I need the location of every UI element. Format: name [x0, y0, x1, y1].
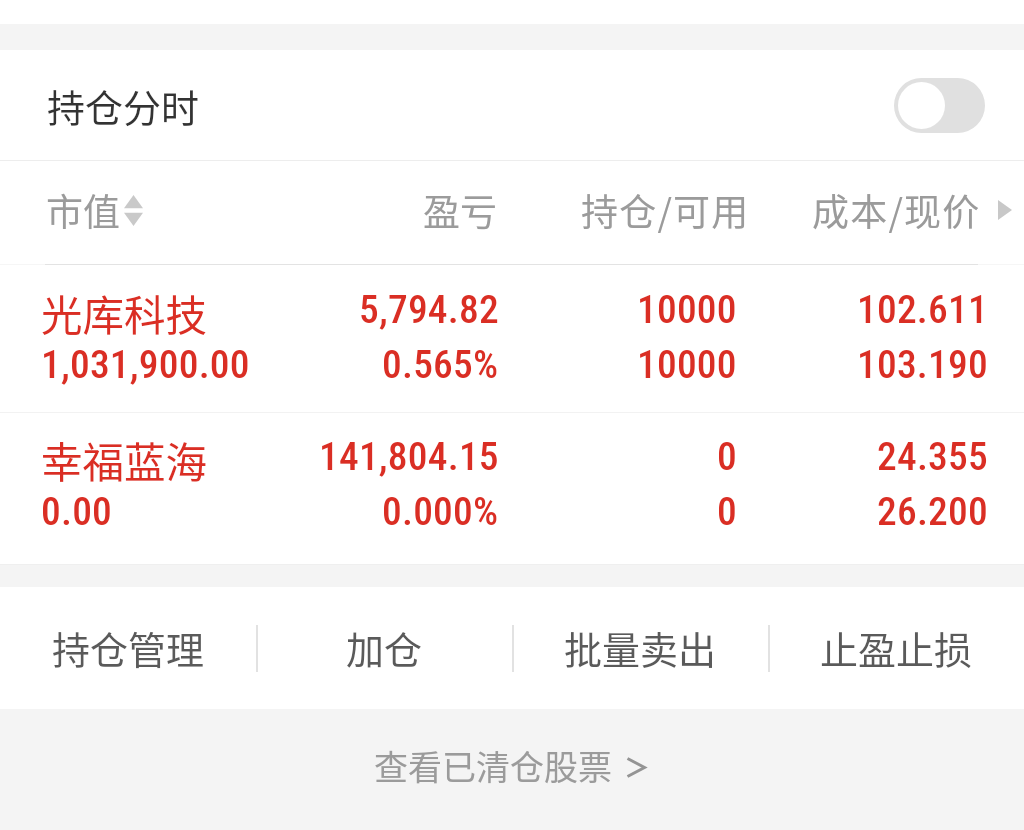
staticText: 0.000%	[382, 488, 499, 534]
staticText: 0.00	[41, 488, 113, 534]
staticText: 市值	[46, 183, 120, 237]
staticText: 102.611	[857, 286, 988, 332]
button[interactable]: 成本/现价	[812, 183, 1012, 237]
staticText: 5,794.82	[359, 286, 499, 332]
button[interactable]: 持仓管理	[0, 587, 256, 709]
button[interactable]: 幸福蓝海	[0, 413, 1024, 564]
staticText: 批量卖出	[564, 620, 717, 675]
staticText: 103.190	[857, 341, 988, 387]
staticText: 0.565%	[382, 341, 499, 387]
staticText: 查看已清仓股票	[374, 741, 612, 790]
staticText: 止盈止损	[820, 620, 973, 675]
staticText: 加仓	[346, 620, 423, 675]
button[interactable]: 批量卖出	[512, 587, 768, 709]
staticText: 10000	[637, 341, 737, 387]
button[interactable]: 查看已清仓股票	[374, 741, 646, 790]
staticText: 24.355	[877, 433, 988, 479]
staticText: 幸福蓝海	[41, 430, 208, 490]
button[interactable]: 加仓	[256, 587, 512, 709]
staticText: 光库科技	[41, 283, 208, 343]
staticText: 持仓管理	[52, 620, 205, 675]
staticText: 持仓分时	[47, 78, 200, 133]
button[interactable]: 持仓分时 开关	[894, 78, 985, 133]
button[interactable]: 止盈止损	[768, 587, 1024, 709]
staticText: 141,804.15	[319, 433, 499, 479]
button[interactable]: 光库科技	[0, 265, 1024, 412]
button[interactable]: 市值	[46, 183, 143, 237]
button[interactable]: 盈亏	[423, 183, 497, 237]
staticText: 0	[717, 488, 737, 534]
staticText: 0	[717, 433, 737, 479]
staticText: 26.200	[877, 488, 988, 534]
staticText: 成本/现价	[812, 183, 981, 237]
staticText: 10000	[637, 286, 737, 332]
button[interactable]: 持仓/可用	[581, 183, 750, 237]
staticText: 1,031,900.00	[41, 341, 250, 387]
